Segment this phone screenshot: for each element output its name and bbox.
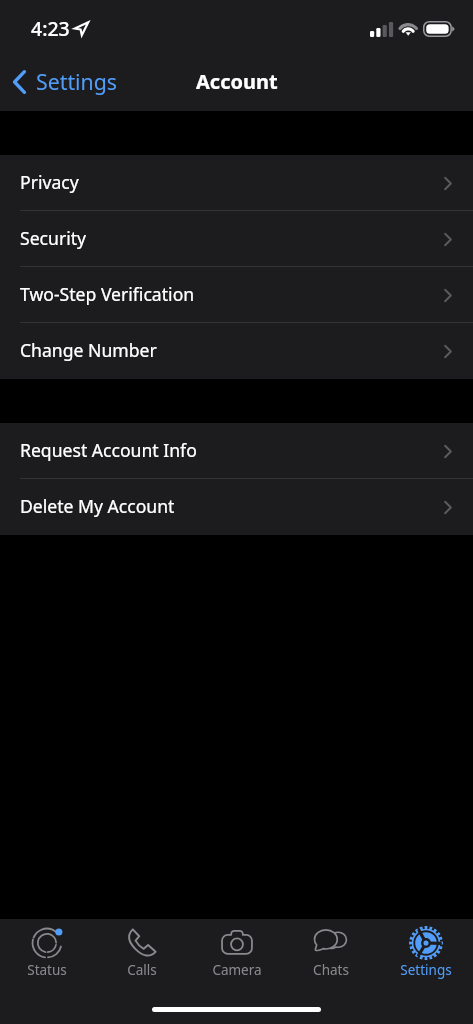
button[interactable]: Privacy: [0, 155, 473, 211]
button[interactable]: Settings: [4, 64, 128, 99]
button[interactable]: Status: [0, 919, 94, 979]
button[interactable]: Two-Step Verification: [0, 267, 473, 323]
button[interactable]: Camera: [190, 919, 284, 979]
staticText: 4:23: [31, 15, 70, 42]
button[interactable]: Change Number: [0, 323, 473, 379]
staticText: Chats: [313, 961, 349, 979]
button[interactable]: Calls: [95, 919, 189, 979]
staticText: Two-Step Verification: [20, 282, 195, 306]
staticText: Account: [196, 68, 278, 95]
staticText: Settings: [400, 961, 452, 979]
button[interactable]: Request Account Info: [0, 423, 473, 479]
staticText: Calls: [127, 961, 157, 979]
button[interactable]: Delete My Account: [0, 479, 473, 535]
staticText: Security: [20, 226, 87, 250]
staticText: Privacy: [20, 170, 79, 194]
staticText: Status: [27, 961, 67, 979]
staticText: Delete My Account: [20, 494, 175, 518]
staticText: Camera: [212, 961, 262, 979]
staticText: Request Account Info: [20, 438, 197, 462]
staticText: Change Number: [20, 338, 157, 362]
button[interactable]: Chats: [284, 919, 378, 979]
staticText: Settings: [36, 67, 118, 96]
button[interactable]: Security: [0, 211, 473, 267]
button[interactable]: Settings: [379, 919, 473, 979]
